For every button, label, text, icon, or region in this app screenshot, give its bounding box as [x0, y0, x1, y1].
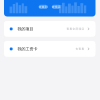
staticText: 去找活	[52, 5, 61, 9]
staticText: 我的工资卡	[18, 46, 38, 51]
staticText: 去签到	[39, 5, 48, 9]
button[interactable]: 去找活	[52, 5, 61, 9]
button[interactable]: 我的工资卡	[4, 41, 95, 57]
staticText: 查看全部项目	[67, 27, 85, 31]
button[interactable]: 去签到	[39, 5, 48, 9]
staticText: 去查看	[76, 47, 85, 51]
button[interactable]: 我的项目	[4, 21, 95, 37]
staticText: 我的项目	[18, 26, 34, 31]
